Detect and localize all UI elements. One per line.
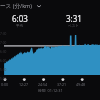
staticText: 12:27 (14, 82, 33, 87)
staticText: 7:00 (0, 41, 7, 45)
staticText: ース (分/km) (0, 2, 33, 10)
staticText: 0:00 (0, 82, 14, 87)
staticText: 37:21 (52, 82, 71, 87)
button[interactable]: 3:31 (60, 13, 88, 29)
staticText: 5:00 (0, 77, 7, 81)
staticText: 平均 (16, 24, 24, 29)
button[interactable]: 6:03 (6, 13, 34, 29)
staticText: 3:31 (66, 13, 82, 24)
staticText: 5:30 (0, 68, 7, 72)
staticText: 49:48 (71, 82, 90, 87)
other: Change metric (36, 3, 42, 9)
staticText: 6:03 (12, 13, 28, 24)
button[interactable]: ース (分/km) (0, 0, 100, 11)
staticText: 6:30 (0, 50, 7, 54)
staticText: 時間 01:12:31 (38, 88, 63, 93)
staticText: 6:00 (0, 59, 7, 63)
staticText: 24:54 (33, 82, 52, 87)
staticText: ベスト (68, 24, 80, 29)
staticText: 7:30 (0, 32, 7, 36)
